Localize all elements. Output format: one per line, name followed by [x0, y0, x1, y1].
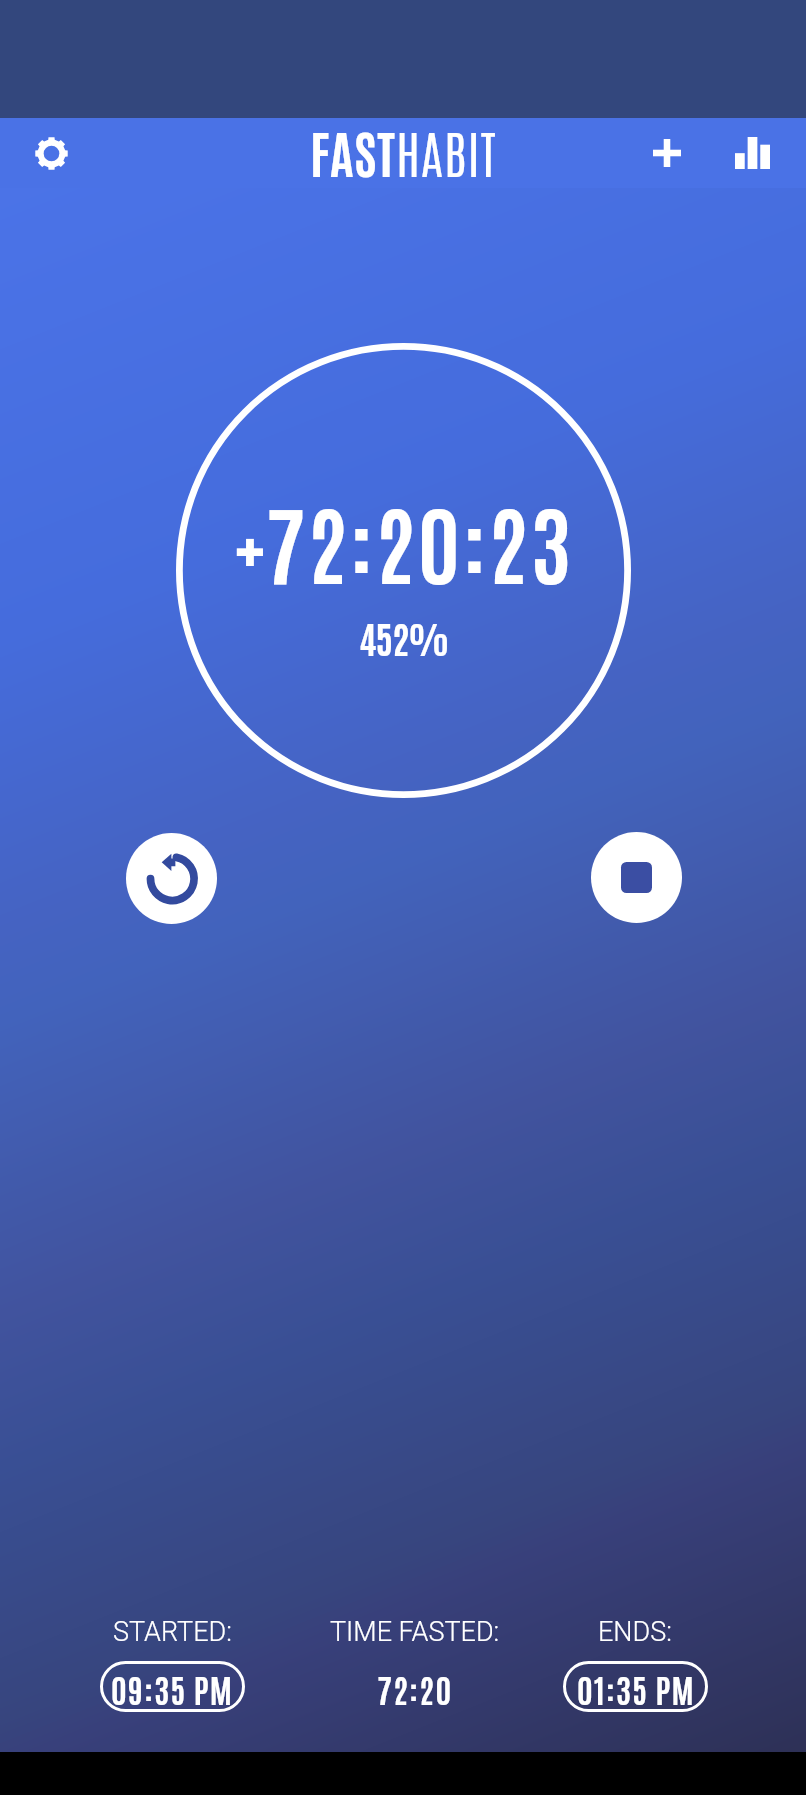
staticText: +72:20:23 [233, 485, 574, 596]
staticText: FASTHABIT [310, 118, 497, 184]
staticText: 01:35 PM [577, 1668, 695, 1709]
staticText: STARTED: [113, 1616, 232, 1648]
staticText: 09:35 PM [111, 1668, 234, 1709]
button[interactable]: Settings [9, 118, 93, 188]
staticText: 72:20 [377, 1668, 453, 1709]
staticText: ENDS: [598, 1616, 672, 1648]
button[interactable]: Statistics [710, 118, 794, 188]
button[interactable]: Add fast [625, 118, 709, 188]
button[interactable]: Stop fast [591, 832, 682, 923]
button[interactable]: Restart fast [126, 833, 217, 924]
staticText: TIME FASTED: [330, 1616, 500, 1648]
staticText: 452% [359, 612, 449, 661]
